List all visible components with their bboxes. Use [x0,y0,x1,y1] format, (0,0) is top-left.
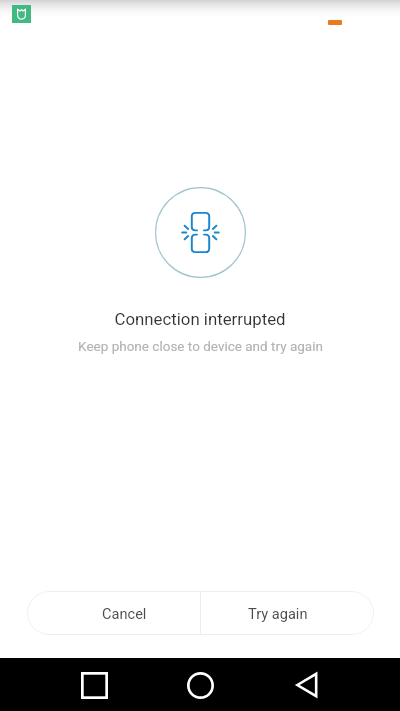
staticText: Cancel [102,605,147,622]
staticText: Try again [248,605,308,622]
button[interactable]: Recent apps [70,661,118,709]
staticText: Keep phone close to device and try again [78,338,323,354]
button[interactable]: Back [282,661,330,709]
staticText: Connection interrupted [114,309,286,329]
button[interactable]: Home [176,661,224,709]
button[interactable]: Cancel [27,591,200,635]
button[interactable]: Try again [201,591,374,635]
